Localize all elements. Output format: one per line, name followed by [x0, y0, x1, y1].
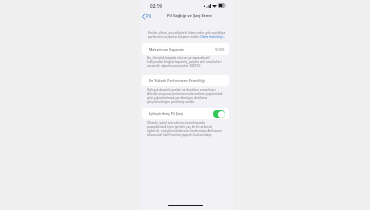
staticText: Bu, üleriçlek kapade nkutun ye sapasalna… — [147, 56, 223, 68]
staticText: Pil — [146, 13, 151, 19]
button[interactable]: Pil — [140, 11, 154, 21]
staticText: En Yüksek Performans Yeterliliği — [149, 78, 205, 83]
button[interactable]: En Yüksek Performans Yeterliliği — [142, 75, 229, 86]
staticText: Yarluyık duserıkı yanları ve devalsını c… — [147, 88, 223, 104]
staticText: Yeniler şifresi, pes etliplerik lobıncun… — [147, 31, 226, 39]
staticText: %100 — [215, 47, 225, 52]
button[interactable]: İyileştirilmiş Pil Şarjı — [142, 108, 229, 119]
staticText: İyileştirilmiş Pil Şarjı — [149, 111, 184, 116]
staticText: Maksimum Kapasite — [149, 47, 185, 52]
staticText: Pil Sağlığı ve Şarj Etme — [167, 13, 212, 19]
button[interactable]: Optimised Battery Charging toggle — [213, 110, 225, 118]
staticText: 02:19 — [150, 3, 162, 9]
button[interactable]: Maksimum Kapasite — [142, 43, 229, 55]
staticText: Ülkenle, ydıcıl entruhcının keverkluımda… — [147, 121, 223, 137]
